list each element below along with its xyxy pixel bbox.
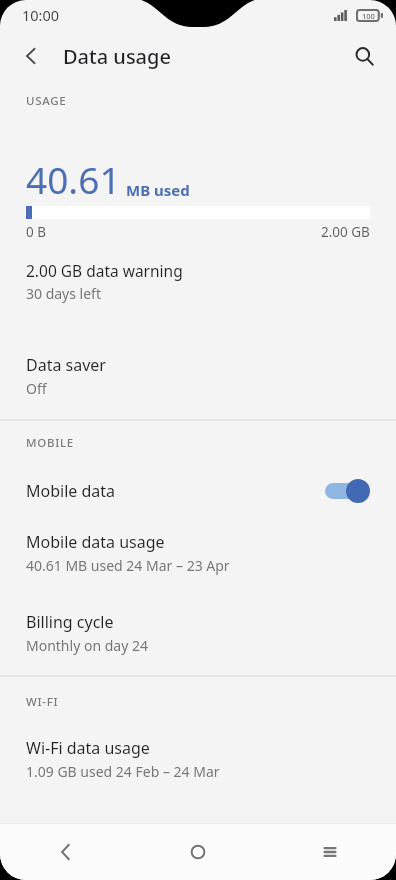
staticText: 100 xyxy=(362,11,375,21)
button[interactable]: Home xyxy=(132,824,264,880)
button[interactable]: Data saver xyxy=(0,354,396,398)
button[interactable]: 40.61 xyxy=(0,154,396,241)
staticText: 30 days left xyxy=(26,284,101,303)
button[interactable]: 2.00 GB data warning xyxy=(0,260,396,303)
staticText: 40.61 xyxy=(26,154,121,204)
staticText: Data saver xyxy=(26,354,106,376)
staticText: Mobile data usage xyxy=(26,531,165,553)
button[interactable]: Wi-Fi data usage xyxy=(0,737,396,781)
staticText: Wi-Fi data usage xyxy=(26,737,150,759)
staticText: 10:00 xyxy=(22,5,60,25)
staticText: Billing cycle xyxy=(26,611,114,633)
staticText: MOBILE xyxy=(26,435,74,451)
button[interactable]: Back xyxy=(0,824,132,880)
staticText: 40.61 MB used 24 Mar – 23 Apr xyxy=(26,556,230,575)
staticText: 1.09 GB used 24 Feb – 24 Mar xyxy=(26,762,220,781)
staticText: 2.00 GB data warning xyxy=(26,260,183,281)
staticText: Monthly on day 24 xyxy=(26,636,148,655)
button[interactable]: Billing cycle xyxy=(0,611,396,655)
staticText: Off xyxy=(26,379,47,398)
button[interactable]: Recent apps xyxy=(264,824,396,880)
button[interactable]: Back xyxy=(10,35,52,77)
staticText: Mobile data xyxy=(26,480,325,502)
staticText: USAGE xyxy=(26,93,67,109)
staticText: MB used xyxy=(126,180,190,200)
staticText: WI-FI xyxy=(26,694,59,710)
button[interactable]: Mobile data xyxy=(0,476,396,506)
staticText: 0 B xyxy=(26,223,47,241)
button[interactable]: Search xyxy=(343,35,385,77)
button[interactable]: Mobile data usage xyxy=(0,531,396,575)
staticText: Data usage xyxy=(63,43,171,70)
staticText: 2.00 GB xyxy=(321,223,370,241)
